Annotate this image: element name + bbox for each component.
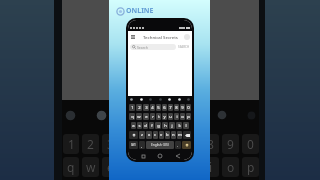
staticText: f: [151, 123, 153, 129]
staticText: u: [187, 159, 195, 175]
staticText: z: [141, 132, 143, 138]
staticText: v: [160, 132, 163, 138]
button[interactable]: d: [143, 122, 148, 129]
button[interactable]: Shift: [129, 131, 138, 139]
button[interactable]: x: [146, 131, 152, 139]
button[interactable]: 2: [136, 104, 142, 111]
staticText: o: [227, 159, 235, 175]
staticText: 0: [247, 136, 254, 152]
button[interactable]: Backspace: [183, 131, 191, 139]
button[interactable]: k: [176, 122, 182, 129]
staticText: o: [181, 114, 184, 120]
button[interactable]: Back: [175, 153, 181, 159]
button[interactable]: p: [186, 113, 191, 120]
button[interactable]: j: [169, 122, 175, 129]
staticText: SEARCH: [178, 45, 190, 49]
button[interactable]: f: [149, 122, 154, 129]
staticText: 3: [107, 136, 114, 152]
button[interactable]: 3: [143, 104, 149, 111]
button[interactable]: z: [139, 131, 145, 139]
button[interactable]: y: [162, 113, 167, 120]
button[interactable]: n: [171, 131, 176, 139]
button[interactable]: 4: [150, 104, 155, 111]
button[interactable]: i: [174, 113, 179, 120]
staticText: y: [163, 114, 166, 120]
button[interactable]: g: [155, 122, 161, 129]
staticText: r: [128, 159, 133, 175]
button[interactable]: ,: [139, 141, 145, 149]
button[interactable]: v: [159, 131, 164, 139]
staticText: 9: [227, 136, 234, 152]
button[interactable]: Account: [184, 34, 190, 40]
button[interactable]: l: [183, 122, 189, 129]
staticText: w: [137, 114, 141, 120]
button[interactable]: 6: [162, 104, 167, 111]
staticText: p: [187, 114, 190, 120]
staticText: l: [185, 123, 187, 129]
staticText: b: [166, 132, 169, 138]
button[interactable]: m: [177, 131, 182, 139]
staticText: 4: [151, 105, 154, 111]
staticText: 1: [131, 105, 134, 111]
staticText: 9: [181, 105, 184, 111]
button[interactable]: 8: [174, 104, 179, 111]
staticText: j: [171, 123, 173, 129]
staticText: 5: [157, 105, 160, 111]
button[interactable]: r: [150, 113, 155, 120]
button[interactable]: q: [129, 113, 135, 120]
button[interactable]: s: [137, 122, 142, 129]
button[interactable]: Enter: [182, 141, 191, 149]
staticText: c: [154, 132, 157, 138]
staticText: ,: [141, 143, 143, 148]
staticText: i: [176, 114, 178, 120]
staticText: d: [144, 123, 147, 129]
button[interactable]: Home: [157, 153, 163, 159]
staticText: 2: [87, 136, 94, 152]
button[interactable]: h: [162, 122, 168, 129]
button[interactable]: e: [143, 113, 149, 120]
staticText: i: [209, 159, 213, 175]
staticText: p: [247, 159, 255, 175]
button[interactable]: 9: [180, 104, 185, 111]
staticText: e: [145, 114, 148, 120]
button[interactable]: Recents: [140, 153, 146, 159]
button[interactable]: b: [165, 131, 170, 139]
button[interactable]: o: [180, 113, 185, 120]
button[interactable]: t: [156, 113, 161, 120]
staticText: y: [167, 159, 174, 175]
button[interactable]: w: [136, 113, 142, 120]
button[interactable]: Menu: [130, 34, 136, 40]
staticText: g: [157, 123, 160, 129]
staticText: h: [164, 123, 167, 129]
staticText: s: [138, 123, 141, 129]
staticText: t: [158, 114, 160, 120]
button[interactable]: !#1: [129, 141, 138, 149]
staticText: Technical Secrets: [143, 34, 178, 40]
button[interactable]: .: [175, 141, 181, 149]
button[interactable]: a: [131, 122, 136, 129]
staticText: 3: [145, 105, 148, 111]
staticText: w: [86, 159, 96, 175]
staticText: e: [107, 159, 114, 175]
button[interactable]: 1: [129, 104, 135, 111]
staticText: n: [172, 132, 175, 138]
button[interactable]: u: [168, 113, 173, 120]
staticText: r: [152, 114, 154, 120]
button[interactable]: Search: [130, 44, 176, 50]
button[interactable]: English (US): [146, 141, 174, 149]
button[interactable]: 0: [186, 104, 191, 111]
staticText: q: [67, 159, 75, 175]
staticText: 4: [127, 136, 134, 152]
staticText: 5: [147, 136, 154, 152]
staticText: m: [178, 132, 182, 138]
staticText: 7: [169, 105, 172, 111]
staticText: 8: [207, 136, 214, 152]
staticText: k: [178, 123, 181, 129]
button[interactable]: 7: [168, 104, 173, 111]
staticText: u: [169, 114, 172, 120]
staticText: 6: [163, 105, 166, 111]
staticText: a: [132, 123, 135, 129]
button[interactable]: 5: [156, 104, 161, 111]
staticText: .: [177, 143, 179, 148]
button[interactable]: c: [153, 131, 158, 139]
